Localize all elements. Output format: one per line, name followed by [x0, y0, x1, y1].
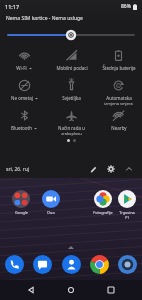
- button[interactable]: Recents: [102, 281, 120, 299]
- button[interactable]: Wi-Fi: [0, 46, 48, 71]
- staticText: sri, 26. ruj: [6, 166, 30, 173]
- staticText: Wi-Fi: [16, 65, 27, 71]
- staticText: Trgovina Pl: [118, 210, 136, 220]
- button[interactable]: Google: [6, 190, 36, 215]
- button[interactable]: Chrome: [90, 255, 109, 274]
- staticText: Google: [15, 210, 28, 215]
- staticText: Automatska: [106, 95, 132, 101]
- button[interactable]: Mobilni podaci: [48, 46, 95, 71]
- button[interactable]: Štednja baterije: [95, 46, 142, 71]
- button[interactable]: Collapse: [122, 162, 136, 176]
- button[interactable]: Trgovina Pl: [118, 190, 136, 220]
- button[interactable]: Način rada u: [48, 106, 95, 136]
- button[interactable]: [8, 28, 134, 42]
- button[interactable]: Svjetiljka: [48, 76, 95, 101]
- staticText: Svjetiljka: [62, 95, 81, 101]
- button[interactable]: Contacts: [62, 255, 81, 274]
- staticText: Štednja baterije: [102, 65, 136, 71]
- button[interactable]: Home: [62, 281, 80, 299]
- button[interactable]: Automatska: [95, 76, 142, 106]
- staticText: zrakoplovu: [61, 131, 82, 136]
- button[interactable]: Ne ometaj: [0, 76, 48, 101]
- button[interactable]: Back: [22, 281, 40, 299]
- button[interactable]: Nearby: [95, 106, 142, 131]
- staticText: Mobilni podaci: [56, 65, 88, 71]
- button[interactable]: Camera: [118, 255, 137, 274]
- staticText: 86%: [121, 3, 131, 10]
- staticText: Ne ometaj: [11, 95, 33, 101]
- button[interactable]: Fotografije: [88, 190, 118, 215]
- button[interactable]: Phone: [5, 255, 24, 274]
- button[interactable]: Edit tiles: [86, 162, 100, 176]
- staticText: izmjena smjera: [104, 101, 133, 106]
- button[interactable]: Duo: [36, 190, 66, 215]
- staticText: 11:17: [5, 3, 20, 10]
- button[interactable]: Messages: [33, 255, 52, 274]
- staticText: Bluetooth: [11, 125, 32, 131]
- staticText: Duo: [47, 210, 55, 215]
- staticText: Nearby: [111, 125, 127, 131]
- staticText: Način rada u: [58, 125, 85, 131]
- button[interactable]: Settings: [104, 162, 118, 176]
- button[interactable]: Bluetooth: [0, 106, 48, 131]
- staticText: Nema SIM kartice - Nema usluge: [6, 15, 83, 22]
- staticText: Fotografije: [93, 210, 113, 215]
